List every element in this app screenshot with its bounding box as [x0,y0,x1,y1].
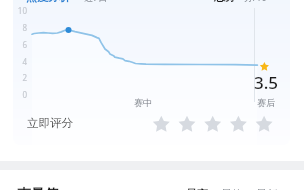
staticText: 2 [7,72,27,84]
staticText: 4 [7,56,27,68]
staticText: 热度分析 [26,0,70,4]
staticText: 近7日 [84,0,108,3]
button[interactable]: Rate now [149,112,275,136]
staticText: 最新 [256,187,278,190]
staticText: 3.5 [254,71,279,94]
staticText: 总分 [214,0,236,4]
staticText: 6 [7,39,27,51]
button[interactable]: 最热 [221,187,243,190]
button[interactable]: 最高 [186,187,208,190]
staticText: 最高 [186,187,208,190]
staticText: 赛中 [134,97,152,108]
staticText: 最热 [221,187,243,190]
staticText: 声量值 [17,186,59,190]
staticText: 0 [7,89,27,101]
staticText: 10 [7,5,27,17]
staticText: 赛后 [257,97,275,108]
staticText: 立即评分 [27,116,73,130]
staticText: 分/10 [244,0,267,3]
staticText: 8 [7,22,27,34]
button[interactable]: 最新 [256,187,278,190]
